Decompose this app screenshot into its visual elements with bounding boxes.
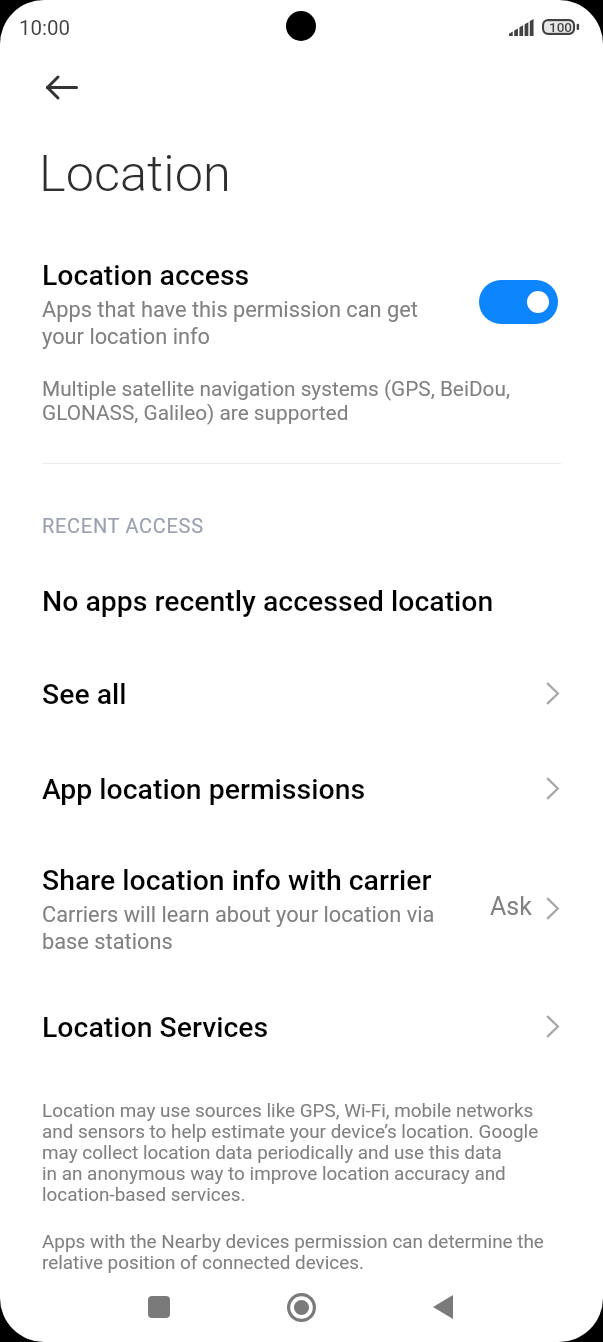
button[interactable]: Location Services xyxy=(0,996,603,1058)
button[interactable]: Share location info with carrier xyxy=(0,852,603,964)
staticText: App location permissions xyxy=(42,773,366,806)
staticText: Apps with the Nearby devices permission … xyxy=(42,1230,544,1274)
button[interactable]: App location permissions xyxy=(0,758,603,820)
staticText: Location may use sources like GPS, Wi-Fi… xyxy=(42,1099,539,1206)
staticText: See all xyxy=(42,678,127,711)
button[interactable]: Location access xyxy=(0,246,603,352)
staticText: RECENT ACCESS xyxy=(42,514,204,537)
button[interactable]: Location access on xyxy=(479,280,558,324)
staticText: Multiple satellite navigation systems (G… xyxy=(42,377,511,425)
staticText: Carriers will learn about your location … xyxy=(42,902,435,954)
staticText: Apps that have this permission can get y… xyxy=(42,297,418,349)
button[interactable]: Navigate up xyxy=(34,59,90,115)
staticText: 10:00 xyxy=(19,16,71,40)
staticText: Location xyxy=(39,144,231,203)
button[interactable]: See all xyxy=(0,664,603,726)
button[interactable]: Home xyxy=(256,1274,346,1340)
staticText: Location access xyxy=(42,259,250,292)
staticText: Share location info with carrier xyxy=(42,864,432,897)
staticText: No apps recently accessed location xyxy=(42,585,494,618)
staticText: Ask xyxy=(490,892,532,921)
staticText: 100 xyxy=(549,19,573,35)
button[interactable]: Recent apps xyxy=(114,1274,204,1340)
button[interactable]: Back xyxy=(398,1274,488,1340)
staticText: Location Services xyxy=(42,1011,269,1044)
